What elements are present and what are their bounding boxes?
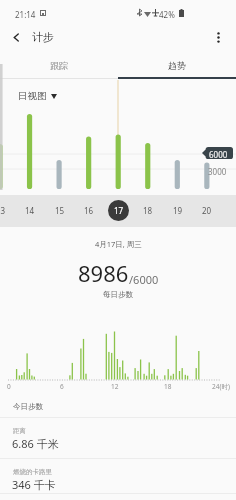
staticText: 6: [60, 382, 64, 391]
staticText: 15: [55, 205, 65, 216]
staticText: 跟踪: [50, 60, 68, 71]
staticText: 17: [114, 205, 124, 216]
staticText: 13: [0, 205, 6, 216]
button[interactable]: 19: [167, 200, 188, 221]
staticText: 21:14: [15, 9, 36, 20]
button[interactable]: 16: [78, 200, 99, 221]
button[interactable]: 燃烧的卡路里: [0, 458, 236, 493]
staticText: 14: [25, 205, 35, 216]
button[interactable]: 日视图: [18, 90, 57, 102]
staticText: 燃烧的卡路里: [13, 468, 52, 476]
button[interactable]: 20: [196, 200, 217, 221]
staticText: 42%: [159, 9, 175, 20]
button[interactable]: More options: [206, 25, 230, 49]
staticText: 3000: [208, 166, 227, 177]
staticText: 12: [111, 382, 119, 391]
staticText: 6.86 千米: [12, 436, 59, 451]
staticText: 20: [202, 205, 212, 216]
button[interactable]: 趋势: [118, 52, 236, 78]
staticText: 日视图: [18, 90, 47, 102]
button[interactable]: 跟踪: [0, 52, 118, 78]
button[interactable]: 18: [137, 200, 158, 221]
button[interactable]: 15: [49, 200, 70, 221]
staticText: 每日步数: [103, 290, 133, 299]
staticText: 4月17日, 周三: [95, 239, 142, 249]
button[interactable]: 14: [19, 200, 40, 221]
staticText: 8986: [78, 258, 129, 288]
staticText: /6000: [129, 272, 159, 287]
button[interactable]: 17: [108, 200, 129, 221]
staticText: 距离: [13, 427, 26, 435]
staticText: 16: [84, 205, 94, 216]
staticText: 24(时): [212, 382, 230, 391]
staticText: 19: [173, 205, 183, 216]
staticText: 346 千卡: [12, 477, 56, 492]
button[interactable]: 13: [0, 200, 11, 221]
button[interactable]: 今日步数: [0, 392, 236, 417]
staticText: 今日步数: [13, 402, 43, 411]
button[interactable]: 距离: [0, 417, 236, 458]
staticText: 0: [7, 382, 11, 391]
button[interactable]: Back: [4, 25, 28, 49]
button[interactable]: 计步: [32, 22, 54, 52]
staticText: 18: [164, 382, 172, 391]
staticText: 计步: [32, 30, 54, 44]
staticText: 趋势: [168, 60, 186, 71]
staticText: 6000: [209, 149, 228, 160]
staticText: 18: [143, 205, 153, 216]
